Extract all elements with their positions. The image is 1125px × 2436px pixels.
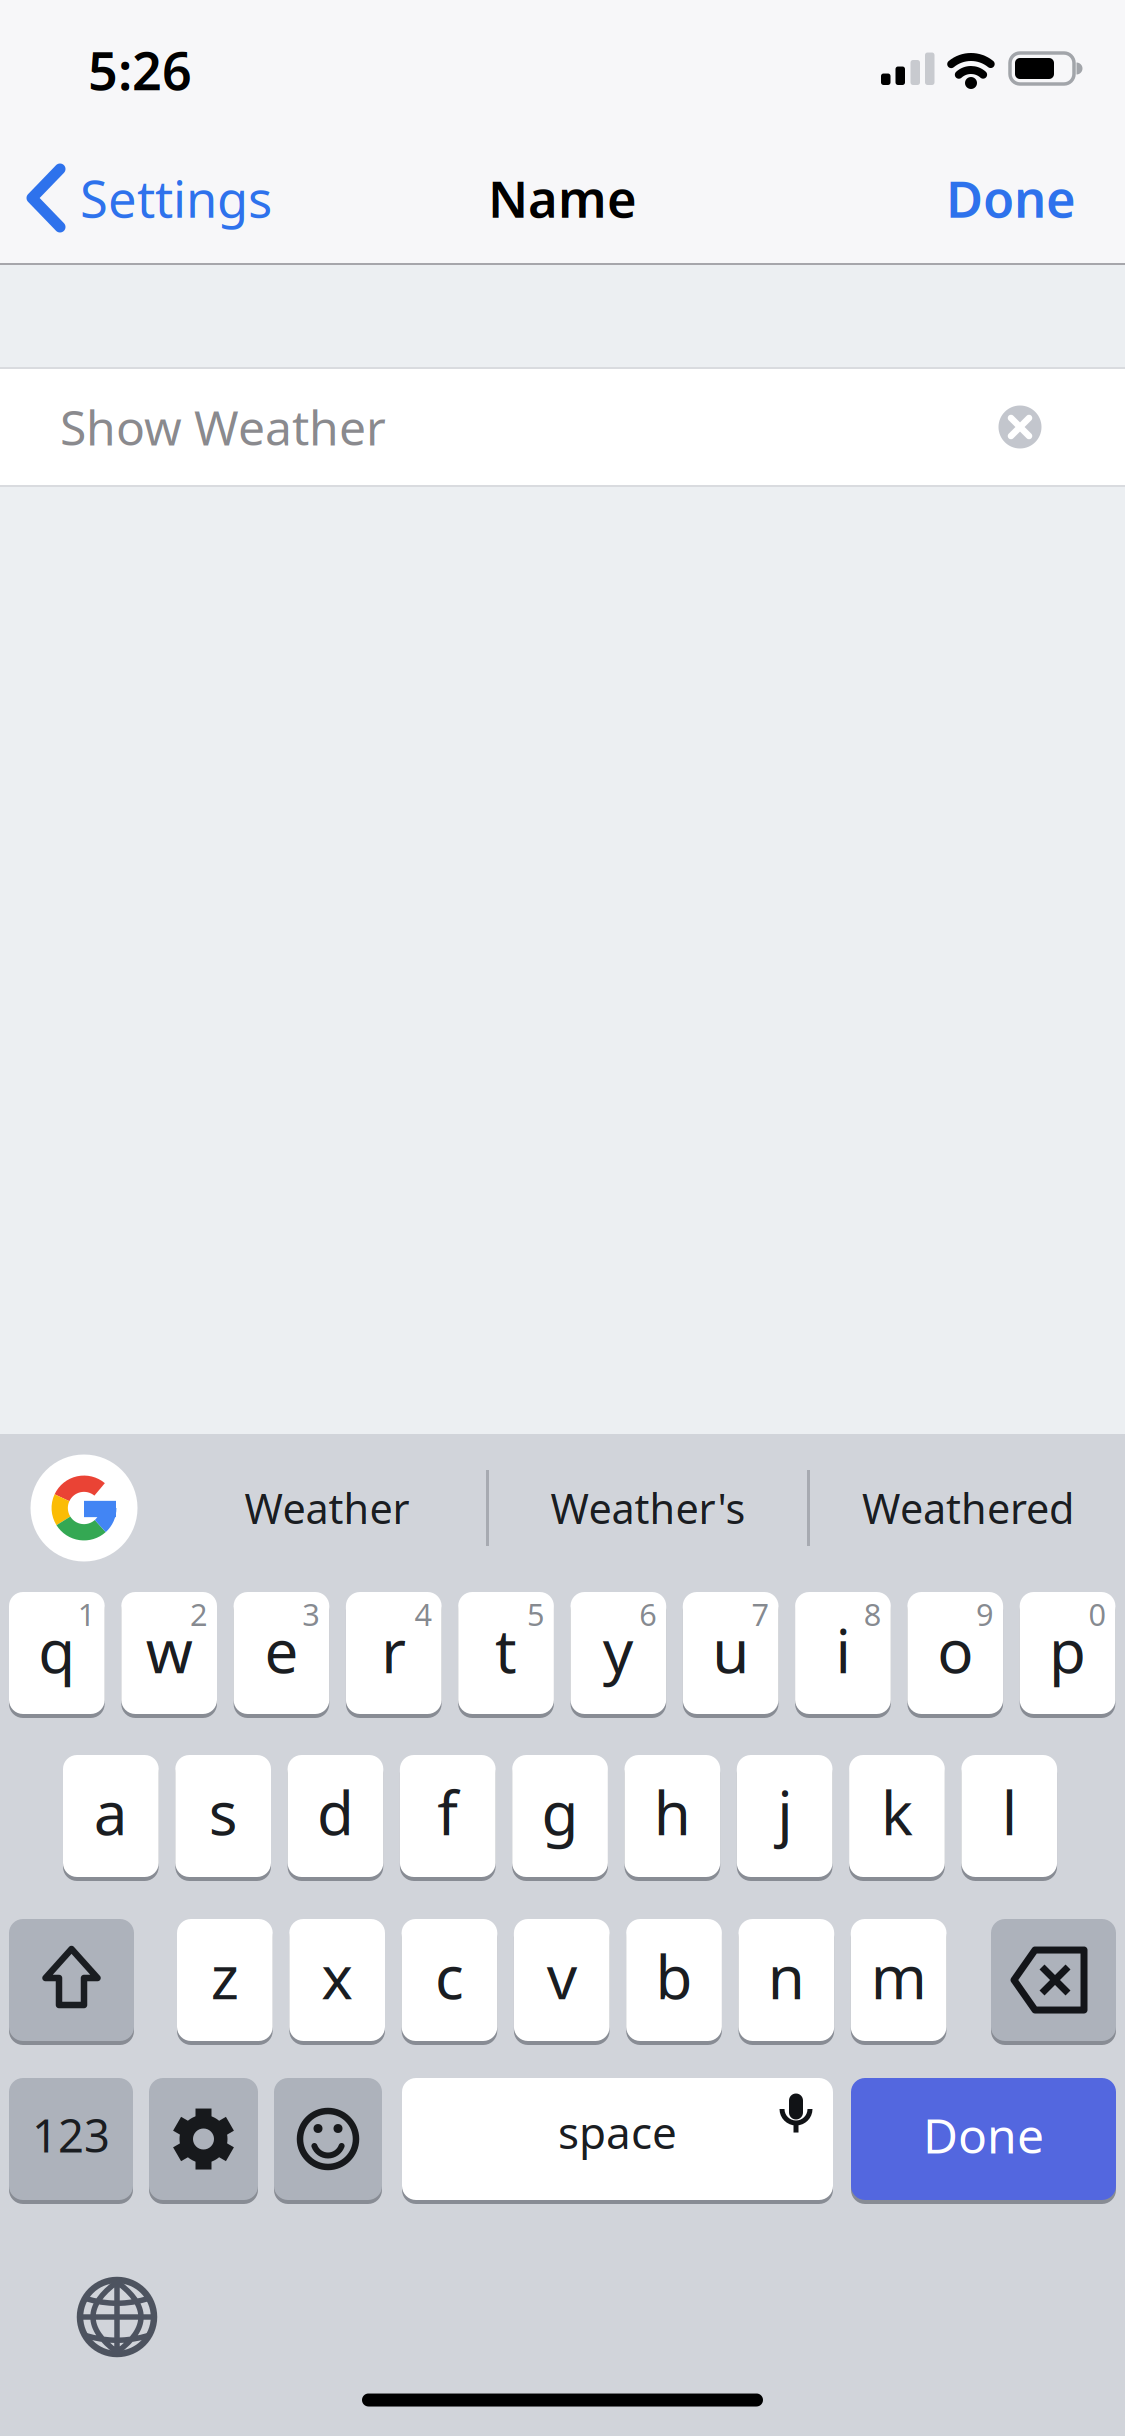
staticText: 5:26 — [88, 35, 192, 105]
button[interactable]: u — [683, 1590, 778, 1716]
staticText: Weather — [244, 1481, 409, 1535]
staticText: c — [435, 1936, 464, 2016]
button[interactable]: m — [851, 1917, 946, 2043]
staticText: 5 — [527, 1594, 545, 1634]
button[interactable]: q — [9, 1590, 105, 1716]
button[interactable]: k — [849, 1753, 945, 1879]
button[interactable]: Weathered — [818, 1448, 1118, 1568]
button[interactable]: Delete — [991, 1917, 1116, 2043]
staticText: 2 — [190, 1594, 208, 1634]
staticText: y — [603, 1610, 634, 1690]
button[interactable]: Weather's — [498, 1448, 798, 1568]
button[interactable]: i — [795, 1590, 891, 1716]
staticText: k — [881, 1772, 913, 1852]
button[interactable]: j — [737, 1753, 832, 1879]
staticText: t — [495, 1610, 517, 1690]
button[interactable]: Clear text — [998, 405, 1041, 448]
staticText: 7 — [751, 1594, 769, 1634]
button[interactable]: r — [346, 1590, 442, 1716]
button[interactable]: Settings — [149, 2076, 258, 2202]
staticText: a — [94, 1772, 128, 1852]
staticText: Done — [946, 164, 1076, 232]
staticText: f — [437, 1772, 458, 1852]
button[interactable]: p — [1020, 1590, 1115, 1716]
button[interactable]: b — [626, 1917, 722, 2043]
button[interactable]: n — [738, 1917, 834, 2043]
button[interactable]: c — [402, 1917, 497, 2043]
button[interactable]: Done — [0, 0, 1125, 2436]
staticText: 3 — [302, 1594, 320, 1634]
staticText: o — [937, 1610, 973, 1690]
button[interactable]: Emoji — [274, 2076, 382, 2202]
button[interactable]: s — [175, 1753, 271, 1879]
staticText: 6 — [639, 1594, 657, 1634]
staticText: q — [38, 1610, 75, 1690]
button[interactable]: g — [512, 1753, 608, 1879]
staticText: p — [1049, 1610, 1086, 1690]
staticText: d — [317, 1772, 354, 1852]
staticText: x — [321, 1936, 353, 2016]
button[interactable]: y — [570, 1590, 666, 1716]
button[interactable]: Numbers — [9, 2076, 133, 2202]
button[interactable]: f — [400, 1753, 496, 1879]
button[interactable]: x — [289, 1917, 385, 2043]
button[interactable]: a — [63, 1753, 159, 1879]
staticText: h — [654, 1772, 691, 1852]
button[interactable]: Name text field — [0, 368, 1125, 485]
staticText: e — [264, 1610, 298, 1690]
staticText: Weather's — [550, 1481, 745, 1535]
button[interactable]: e — [234, 1590, 329, 1716]
staticText: 9 — [976, 1594, 994, 1634]
button[interactable]: v — [514, 1917, 610, 2043]
staticText: r — [381, 1610, 406, 1690]
staticText: g — [542, 1772, 579, 1852]
staticText: z — [211, 1936, 239, 2016]
staticText: Name — [488, 164, 637, 232]
button[interactable]: w — [121, 1590, 217, 1716]
button[interactable]: space — [402, 2076, 833, 2202]
button[interactable]: Google search — [30, 1454, 137, 1561]
staticText: b — [656, 1936, 693, 2016]
button[interactable]: l — [961, 1753, 1057, 1879]
staticText: space — [558, 2103, 677, 2161]
staticText: 8 — [864, 1594, 882, 1634]
staticText: u — [712, 1610, 749, 1690]
button[interactable]: d — [288, 1753, 383, 1879]
button[interactable]: Shift — [9, 1917, 134, 2043]
staticText: s — [209, 1772, 238, 1852]
staticText: n — [768, 1936, 805, 2016]
button[interactable]: t — [458, 1590, 554, 1716]
staticText: i — [835, 1610, 850, 1690]
staticText: Settings — [80, 164, 272, 232]
button[interactable]: Next keyboard — [77, 2277, 157, 2357]
button[interactable]: Weather — [177, 1448, 477, 1568]
button[interactable]: h — [624, 1753, 720, 1879]
staticText: Weathered — [862, 1481, 1074, 1535]
staticText: 123 — [32, 2105, 110, 2165]
button[interactable]: o — [907, 1590, 1003, 1716]
staticText: j — [777, 1772, 792, 1852]
staticText: Show Weather — [60, 395, 386, 459]
staticText: 1 — [78, 1594, 96, 1634]
staticText: Done — [923, 2103, 1044, 2167]
staticText: v — [547, 1936, 577, 2016]
staticText: l — [1002, 1772, 1017, 1852]
staticText: 0 — [1088, 1594, 1106, 1634]
button[interactable]: z — [177, 1917, 273, 2043]
staticText: m — [871, 1936, 927, 2016]
button[interactable]: Done — [851, 2076, 1116, 2202]
staticText: 4 — [415, 1594, 433, 1634]
button[interactable]: Settings — [0, 0, 1125, 2436]
staticText: w — [146, 1610, 193, 1690]
